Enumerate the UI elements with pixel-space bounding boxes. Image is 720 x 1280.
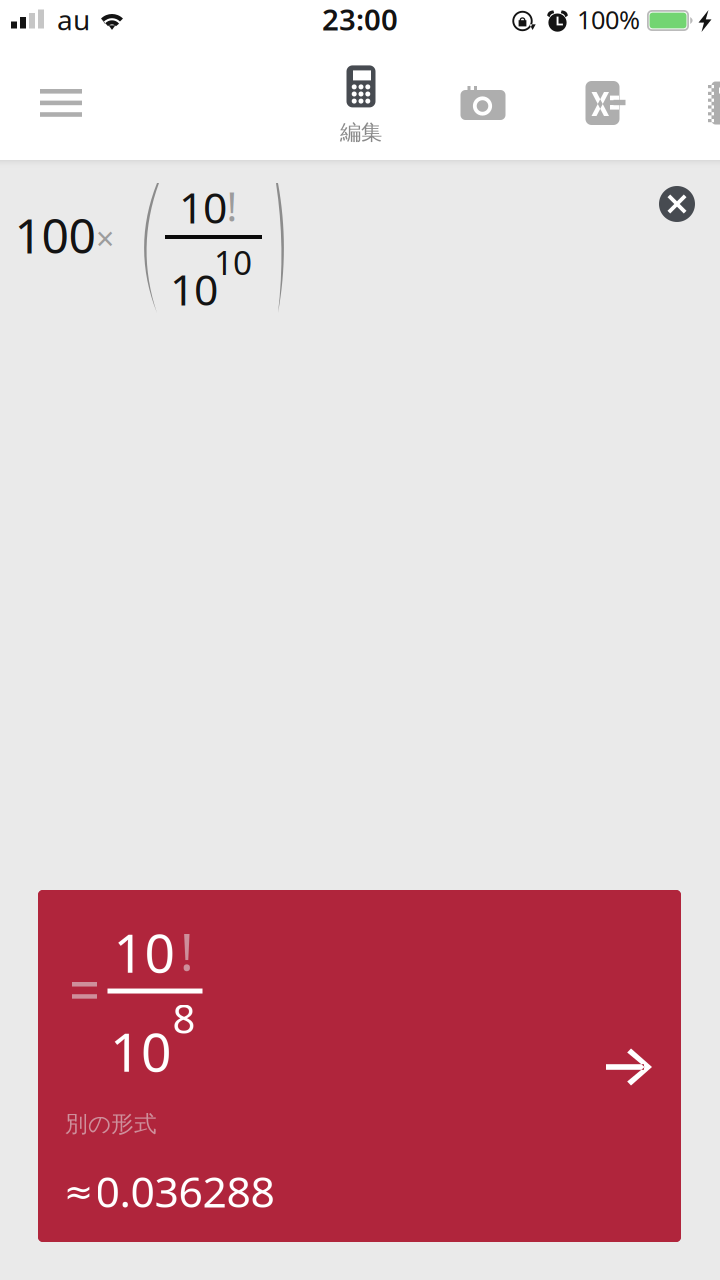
staticText: 10	[113, 917, 175, 987]
button[interactable]: Solve for X	[569, 46, 643, 160]
staticText: 8	[172, 991, 195, 1044]
staticText: au	[57, 1, 90, 38]
staticText: ≈	[64, 1172, 93, 1212]
button[interactable]: Menu	[0, 46, 122, 160]
button[interactable]: 編集	[301, 46, 421, 160]
staticText: 10	[110, 1016, 172, 1086]
staticText: 10	[170, 261, 218, 317]
button[interactable]: Clear	[645, 172, 709, 236]
staticText: 10	[214, 240, 252, 284]
staticText: 100	[14, 203, 95, 267]
staticText: ×	[96, 217, 114, 259]
staticText: !	[226, 179, 237, 232]
button[interactable]: Notebook	[708, 46, 720, 160]
button[interactable]: 10	[38, 890, 681, 1242]
staticText: 別の形式	[65, 1110, 157, 1138]
staticText: 10	[179, 179, 227, 235]
staticText: !	[180, 917, 194, 985]
button[interactable]: Camera	[438, 46, 528, 160]
staticText: 編集	[340, 119, 382, 146]
staticText: 23:00	[322, 0, 398, 38]
staticText: 0.036288	[95, 1163, 274, 1219]
staticText: 100%	[577, 3, 640, 36]
